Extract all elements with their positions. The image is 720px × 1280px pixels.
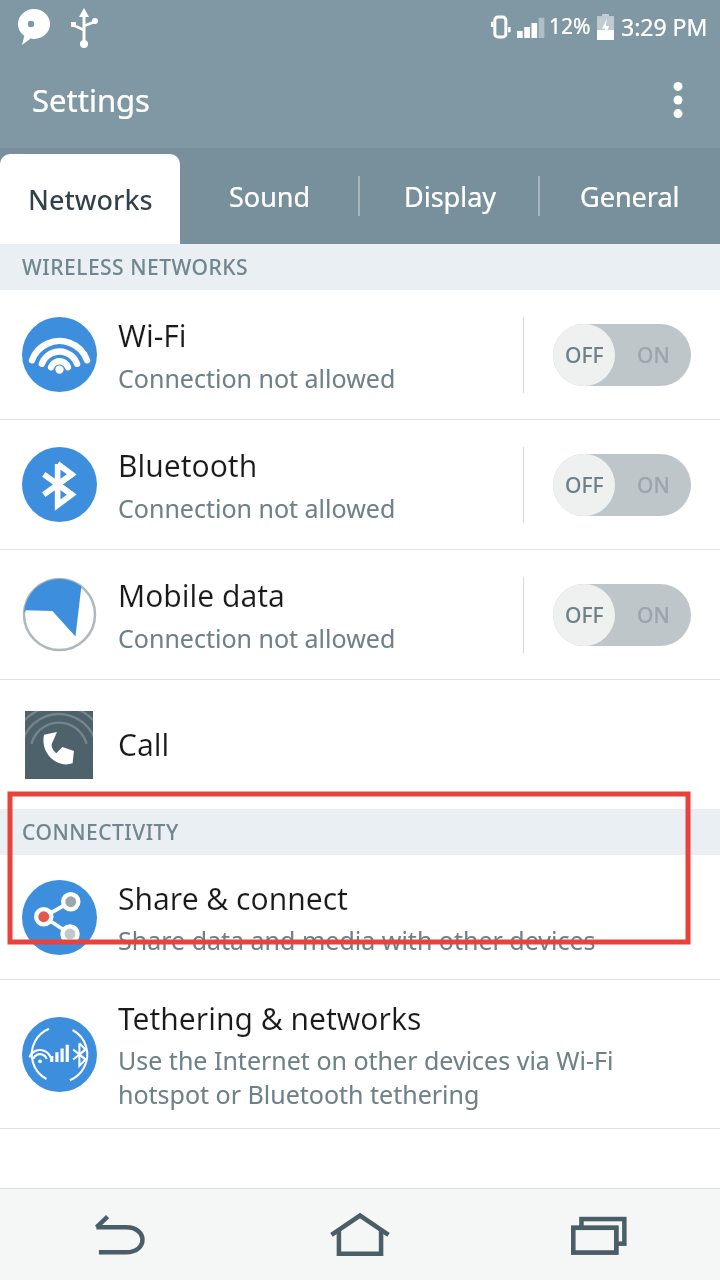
staticText: OFF bbox=[565, 341, 604, 370]
button[interactable]: Bluetooth toggle, off bbox=[524, 420, 720, 549]
button[interactable]: Mobile data toggle, off bbox=[524, 550, 720, 679]
staticText: Bluetooth bbox=[118, 445, 258, 486]
button[interactable]: Call bbox=[0, 680, 720, 809]
button[interactable]: Back bbox=[0, 1188, 240, 1280]
staticText: Mobile data bbox=[118, 575, 285, 616]
staticText: General bbox=[580, 178, 680, 215]
button[interactable]: More options bbox=[650, 72, 706, 128]
staticText: hotspot or Bluetooth tethering bbox=[118, 1077, 480, 1111]
staticText: Connection not allowed bbox=[118, 621, 396, 655]
staticText: ON bbox=[637, 341, 670, 370]
staticText: Share & connect bbox=[118, 878, 348, 919]
staticText: ON bbox=[637, 601, 670, 630]
staticText: CONNECTIVITY bbox=[22, 818, 179, 847]
button[interactable]: Recent apps bbox=[480, 1188, 720, 1280]
button[interactable]: General bbox=[540, 148, 720, 244]
button[interactable]: Tethering & networks bbox=[0, 980, 720, 1128]
staticText: Connection not allowed bbox=[118, 361, 396, 395]
button[interactable]: Wi-Fi toggle, off bbox=[524, 290, 720, 419]
button[interactable]: Bluetooth bbox=[0, 420, 720, 549]
button[interactable]: Display bbox=[360, 148, 540, 244]
staticText: Use the Internet on other devices via Wi… bbox=[118, 1043, 614, 1077]
staticText: Tethering & networks bbox=[118, 998, 422, 1039]
button[interactable]: Networks bbox=[0, 154, 180, 244]
staticText: OFF bbox=[565, 471, 604, 500]
staticText: OFF bbox=[565, 601, 604, 630]
staticText: 3:29 PM bbox=[621, 11, 708, 42]
staticText: ON bbox=[637, 471, 670, 500]
staticText: Sound bbox=[229, 178, 311, 215]
button[interactable]: Sound bbox=[180, 148, 360, 244]
staticText: Wi-Fi bbox=[118, 315, 187, 356]
staticText: Settings bbox=[32, 79, 150, 121]
staticText: Connection not allowed bbox=[118, 491, 396, 525]
button[interactable]: Wi-Fi bbox=[0, 290, 720, 419]
staticText: Display bbox=[404, 178, 497, 215]
staticText: Networks bbox=[28, 181, 153, 218]
staticText: Call bbox=[118, 724, 170, 765]
staticText: 12% bbox=[549, 12, 591, 41]
button[interactable]: Mobile data bbox=[0, 550, 720, 679]
button[interactable]: Share & connect bbox=[0, 855, 720, 979]
button[interactable]: Home bbox=[240, 1188, 480, 1280]
staticText: WIRELESS NETWORKS bbox=[22, 253, 249, 282]
staticText: Share data and media with other devices bbox=[118, 923, 596, 957]
